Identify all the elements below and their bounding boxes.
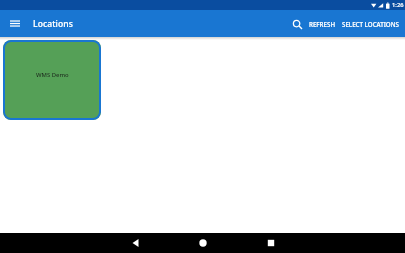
button[interactable] (125, 233, 146, 253)
staticText: 1:26 (392, 1, 404, 9)
button[interactable] (7, 17, 22, 30)
staticText: Locations (33, 18, 73, 30)
staticText: SELECT LOCATIONS (342, 20, 399, 28)
button[interactable] (290, 17, 304, 31)
button[interactable]: REFRESH (307, 16, 338, 32)
button[interactable]: SELECT LOCATIONS (340, 16, 401, 32)
button[interactable] (192, 233, 213, 253)
staticText: REFRESH (309, 20, 336, 28)
button[interactable]: WMS Demo (3, 40, 101, 120)
button[interactable] (260, 233, 281, 253)
staticText: WMS Demo (36, 71, 69, 79)
